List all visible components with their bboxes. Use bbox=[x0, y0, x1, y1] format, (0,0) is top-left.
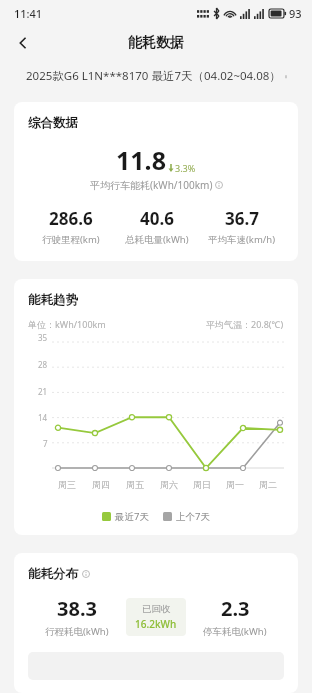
staticText: 行程耗电(kWh) bbox=[45, 625, 109, 638]
staticText: 3.3% bbox=[175, 162, 196, 174]
staticText: 周五 bbox=[126, 479, 144, 490]
staticText: 16.2kWh bbox=[135, 617, 177, 631]
staticText: 能耗趋势 bbox=[28, 292, 78, 308]
staticText: 21 bbox=[38, 386, 48, 397]
staticText: 28 bbox=[38, 359, 48, 370]
staticText: 2.3 bbox=[221, 595, 250, 622]
staticText: 能耗分布 bbox=[28, 566, 78, 582]
button[interactable]: 综合数据 bbox=[14, 102, 298, 261]
staticText: 平均气温：20.8(℃) bbox=[206, 318, 284, 330]
staticText: 周二 bbox=[259, 479, 277, 490]
staticText: 40.6 bbox=[140, 207, 174, 230]
staticText: 总耗电量(kWh) bbox=[125, 233, 189, 246]
staticText: 平均行车能耗(kWh/100km) bbox=[90, 178, 213, 192]
staticText: 14 bbox=[38, 412, 48, 423]
staticText: 35 bbox=[38, 332, 48, 343]
button[interactable]: 能耗趋势 bbox=[14, 279, 298, 535]
staticText: 上个7天 bbox=[176, 510, 210, 523]
staticText: 周四 bbox=[92, 479, 110, 490]
staticText: 已回收 bbox=[142, 603, 171, 615]
staticText: 93 bbox=[289, 6, 302, 21]
staticText: 周六 bbox=[160, 479, 178, 490]
staticText: 周日 bbox=[193, 479, 211, 490]
staticText: 综合数据 bbox=[28, 115, 78, 131]
button[interactable]: Back bbox=[6, 26, 40, 60]
staticText: 单位：kWh/100km bbox=[28, 318, 106, 330]
button[interactable]: 能耗分布 bbox=[14, 553, 298, 693]
staticText: 周三 bbox=[58, 479, 76, 490]
staticText: 11.8 bbox=[116, 143, 166, 177]
staticText: 能耗数据 bbox=[128, 34, 184, 52]
staticText: 7 bbox=[43, 438, 48, 449]
staticText: 286.6 bbox=[49, 207, 93, 230]
staticText: 平均车速(km/h) bbox=[208, 233, 276, 246]
button[interactable]: 2025款G6 L1N***8170 最近7天（04.02~04.08） bbox=[0, 60, 312, 92]
staticText: 36.7 bbox=[225, 207, 259, 230]
staticText: 行驶里程(km) bbox=[42, 233, 100, 246]
staticText: 最近7天 bbox=[115, 510, 149, 523]
staticText: 停车耗电(kWh) bbox=[203, 625, 267, 638]
staticText: 38.3 bbox=[57, 595, 97, 622]
staticText: 2025款G6 L1N***8170 最近7天（04.02~04.08） bbox=[26, 68, 281, 84]
staticText: 11:41 bbox=[14, 6, 43, 21]
staticText: 周一 bbox=[226, 479, 244, 490]
